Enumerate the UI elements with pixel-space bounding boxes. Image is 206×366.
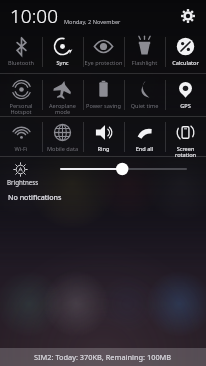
staticText: Ring <box>84 145 123 153</box>
button[interactable]: Mobile data <box>42 117 83 157</box>
button[interactable]: Eye protection <box>83 31 124 73</box>
staticText: No notifications <box>8 192 62 202</box>
button[interactable]: SIM2: Today: 370KB, Remaining: 100MB <box>0 348 206 366</box>
button[interactable]: Wi-Fi <box>0 117 42 157</box>
button[interactable]: Power saving <box>83 74 124 116</box>
button[interactable]: Sync <box>42 31 83 73</box>
staticText: Screen rotation <box>166 145 205 157</box>
staticText: Power saving <box>84 102 123 110</box>
staticText: Wi-Fi <box>1 145 41 153</box>
staticText: Calculator <box>166 59 205 67</box>
button[interactable]: Settings <box>178 6 198 26</box>
staticText: 10:00 <box>10 3 59 29</box>
button[interactable]: Quiet time <box>124 74 165 116</box>
staticText: Eye protection <box>84 59 123 67</box>
staticText: Brightness <box>7 178 39 186</box>
staticText: Quiet time <box>125 102 164 110</box>
staticText: Aeroplane mode <box>43 102 82 116</box>
button[interactable]: Personal Hotspot <box>0 74 42 116</box>
staticText: Bluetooth <box>1 59 41 67</box>
staticText: GPS <box>166 102 205 110</box>
staticText: SIM2: Today: 370KB, Remaining: 100MB <box>34 352 172 362</box>
button[interactable]: Flashlight <box>124 31 165 73</box>
button[interactable]: Calculator <box>165 31 206 73</box>
staticText: Sync <box>43 59 82 67</box>
button[interactable]: End all <box>124 117 165 157</box>
button[interactable] <box>55 161 206 177</box>
button[interactable]: Aeroplane mode <box>42 74 83 116</box>
staticText: Mobile data <box>43 145 82 153</box>
button[interactable]: GPS <box>165 74 206 116</box>
staticText: Personal Hotspot <box>1 102 41 116</box>
button[interactable]: Bluetooth <box>0 31 42 73</box>
staticText: End all <box>125 145 164 153</box>
button[interactable]: Screen rotation <box>165 117 206 157</box>
button[interactable]: Auto brightness <box>11 160 29 178</box>
button[interactable]: Ring <box>83 117 124 157</box>
staticText: Monday, 2 November <box>64 18 121 26</box>
staticText: Flashlight <box>125 59 164 67</box>
